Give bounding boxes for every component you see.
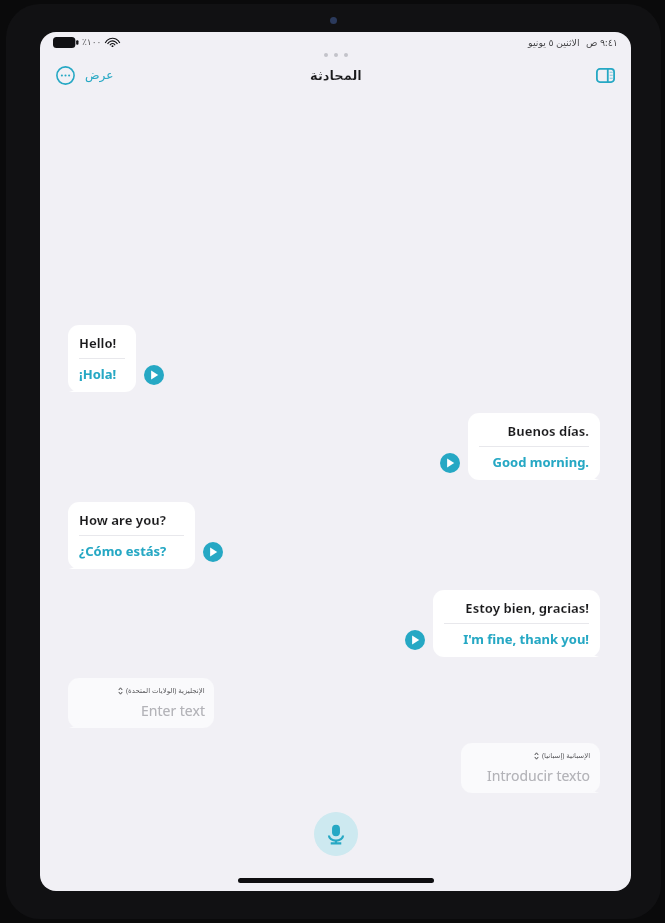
button[interactable]: Buenos días. bbox=[468, 413, 600, 480]
button[interactable]: الإنجليزية (الولايات المتحدة) bbox=[68, 678, 214, 728]
staticText: الإسبانية (إسبانيا) bbox=[542, 751, 591, 761]
button[interactable]: More options bbox=[54, 64, 76, 86]
staticText: Buenos días. bbox=[507, 422, 589, 440]
button[interactable]: Play audio bbox=[202, 541, 224, 563]
staticText: Hello! bbox=[79, 334, 117, 352]
staticText: المحادثة bbox=[310, 68, 362, 83]
button[interactable]: Record audio bbox=[314, 812, 358, 856]
staticText: ٪١٠٠ bbox=[82, 37, 102, 47]
staticText: Good morning. bbox=[492, 453, 589, 471]
staticText: الاثنين ٥ يونيو bbox=[528, 36, 580, 49]
button[interactable]: Play audio bbox=[404, 629, 426, 651]
staticText: عرض bbox=[85, 68, 114, 82]
button[interactable]: How are you? bbox=[68, 502, 195, 569]
staticText: الإنجليزية (الولايات المتحدة) bbox=[126, 686, 205, 696]
staticText: ¡Hola! bbox=[79, 365, 117, 383]
staticText: Estoy bien, gracias! bbox=[465, 599, 589, 617]
button[interactable]: Estoy bien, gracias! bbox=[433, 590, 600, 657]
staticText: Introducir texto bbox=[487, 766, 591, 785]
button[interactable]: عرض bbox=[85, 68, 114, 82]
staticText: I'm fine, thank you! bbox=[463, 630, 589, 648]
button[interactable]: الإسبانية (إسبانيا) bbox=[461, 743, 600, 793]
button[interactable]: Toggle sidebar bbox=[593, 63, 617, 87]
staticText: How are you? bbox=[79, 511, 166, 529]
staticText: ٩:٤١ ص bbox=[586, 36, 618, 49]
button[interactable]: Hello! bbox=[68, 325, 136, 392]
staticText: ¿Cómo estás? bbox=[79, 542, 167, 560]
button[interactable]: Play audio bbox=[143, 364, 165, 386]
button[interactable]: Play audio bbox=[439, 452, 461, 474]
staticText: Enter text bbox=[141, 701, 205, 720]
